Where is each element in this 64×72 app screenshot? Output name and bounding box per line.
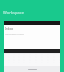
button[interactable]: Workspace	[3, 10, 25, 15]
staticText: Workspace	[3, 10, 25, 15]
staticText: Inbox	[5, 27, 14, 31]
staticText: messages today	[5, 32, 24, 35]
